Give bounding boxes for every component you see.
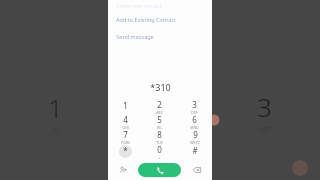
button[interactable]: Add to Existing Contact [108,11,212,27]
staticText: MNO [190,125,199,129]
staticText: 1 [123,100,128,111]
staticText: 7 [123,129,128,140]
staticText: PQRS [121,140,130,144]
staticText: 1 [48,90,63,125]
staticText: Add to Existing Contact [116,16,176,23]
staticText: DEF [191,110,198,114]
button[interactable]: 4 [108,114,142,129]
staticText: JKL [157,125,162,129]
staticText: 5 [157,114,162,125]
staticText: * [123,145,128,156]
button[interactable]: Create new contact [108,2,212,11]
staticText: 8 [157,129,162,140]
staticText: GHI [122,125,129,129]
button[interactable]: 3 [177,99,212,114]
staticText: # [192,145,198,156]
staticText: 2 [157,99,162,110]
staticText: Send message [116,33,154,40]
staticText: 0 [157,144,162,155]
staticText: + [158,155,161,159]
button[interactable]: 2 [142,99,177,114]
button[interactable]: Add contact [108,162,138,178]
button[interactable]: 7 [108,129,142,144]
staticText: TUV [156,140,163,144]
staticText: WXYZ [190,140,200,144]
button[interactable]: 6 [177,114,212,129]
staticText: 3 [192,99,197,110]
staticText: 9 [193,129,198,140]
staticText: Create new contact [116,3,162,10]
button[interactable]: Backspace [181,162,212,178]
button[interactable]: 9 [177,129,212,144]
button[interactable]: * [108,144,142,159]
staticText: *310 [150,81,171,93]
button[interactable]: 0 [142,144,177,159]
staticText: 6 [192,114,197,125]
staticText: 3 [257,89,272,124]
button[interactable]: Send message [108,27,212,45]
button[interactable]: 5 [142,114,177,129]
button[interactable]: 8 [142,129,177,144]
staticText: 4 [123,114,128,125]
button[interactable]: 1 [108,99,142,114]
button[interactable]: Call [138,163,181,177]
staticText: ABC [156,110,163,114]
button[interactable]: # [177,144,212,159]
